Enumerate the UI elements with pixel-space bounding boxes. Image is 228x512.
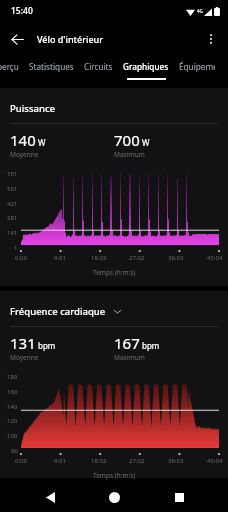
button[interactable]: Statistiques <box>24 56 79 80</box>
staticText: W <box>142 137 150 148</box>
staticText: Temps (h:m:s) <box>93 268 136 277</box>
staticText: 140 <box>10 130 36 150</box>
staticText: Vélo d'intérieur <box>37 33 104 45</box>
staticText: bpm <box>142 340 160 351</box>
staticText: 45:04 <box>207 254 223 262</box>
button[interactable]: More options <box>194 22 228 56</box>
staticText: bpm <box>38 340 56 351</box>
button[interactable]: Recents <box>164 482 194 512</box>
staticText: W <box>38 137 46 148</box>
staticText: Maximum <box>114 353 145 362</box>
staticText: 45:04 <box>207 457 223 465</box>
staticText: 80 <box>11 447 18 455</box>
staticText: Puissance <box>10 102 56 115</box>
staticText: 421 <box>7 200 18 208</box>
staticText: 701 <box>7 170 18 178</box>
staticText: Fréquence cardiaque <box>10 305 106 318</box>
staticText: Équipement <box>179 61 215 72</box>
staticText: 36:03 <box>168 254 184 262</box>
staticText: 15:40 <box>11 5 33 17</box>
staticText: 9:01 <box>54 254 66 262</box>
staticText: 0:00 <box>15 254 27 262</box>
staticText: 160 <box>7 388 18 396</box>
staticText: 18:02 <box>91 457 107 465</box>
staticText: 180 <box>7 373 18 381</box>
staticText: 141 <box>7 229 18 237</box>
button[interactable]: Back <box>0 22 34 56</box>
button[interactable]: Back <box>35 482 65 512</box>
staticText: 0:00 <box>15 457 27 465</box>
staticText: 100 <box>7 432 18 440</box>
staticText: 36:03 <box>168 457 184 465</box>
staticText: 18:02 <box>91 254 107 262</box>
staticText: 27:02 <box>129 457 145 465</box>
staticText: Moyenne <box>10 353 39 362</box>
button[interactable]: Graphiques <box>118 56 174 80</box>
staticText: Circuits <box>84 61 113 72</box>
staticText: 281 <box>7 214 18 222</box>
staticText: Temps (h:m:s) <box>93 471 136 480</box>
button[interactable]: Équipement <box>174 56 220 80</box>
staticText: 27:02 <box>129 254 145 262</box>
staticText: Maximum <box>114 150 145 159</box>
staticText: 9:01 <box>54 457 66 465</box>
staticText: perçu <box>0 61 19 72</box>
staticText: 4G <box>197 8 203 14</box>
button[interactable]: perçu <box>0 56 24 80</box>
button[interactable]: Home <box>99 482 129 512</box>
staticText: Graphiques <box>123 61 169 72</box>
staticText: 120 <box>7 417 18 425</box>
staticText: 131 <box>10 333 36 353</box>
staticText: 140 <box>7 403 18 411</box>
staticText: Statistiques <box>29 61 74 72</box>
staticText: 700 <box>114 130 140 150</box>
staticText: Moyenne <box>10 150 39 159</box>
button[interactable]: Circuits <box>79 56 118 80</box>
staticText: 561 <box>7 185 18 193</box>
staticText: 167 <box>114 333 140 353</box>
staticText: 1 <box>14 244 18 252</box>
